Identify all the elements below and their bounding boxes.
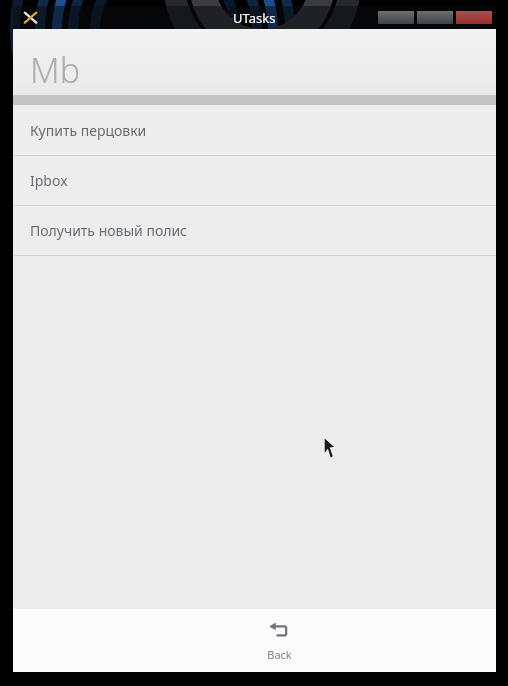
staticText: Back xyxy=(267,647,292,662)
button[interactable]: Minimize xyxy=(378,11,414,24)
button[interactable]: Купить перцовки xyxy=(13,106,496,156)
button[interactable]: Maximize xyxy=(417,11,453,24)
button[interactable]: Получить новый полис xyxy=(13,206,496,256)
staticText: Mb xyxy=(30,47,81,93)
staticText: Получить новый полис xyxy=(30,221,188,240)
staticText: Купить перцовки xyxy=(30,121,147,140)
staticText: UTasks xyxy=(233,9,276,27)
other: Back xyxy=(269,621,291,639)
button[interactable]: Ipbox xyxy=(13,156,496,206)
staticText: Ipbox xyxy=(30,171,68,190)
button[interactable]: App icon xyxy=(23,10,38,25)
button[interactable]: Back xyxy=(38,609,496,672)
button[interactable]: Close xyxy=(456,11,492,24)
